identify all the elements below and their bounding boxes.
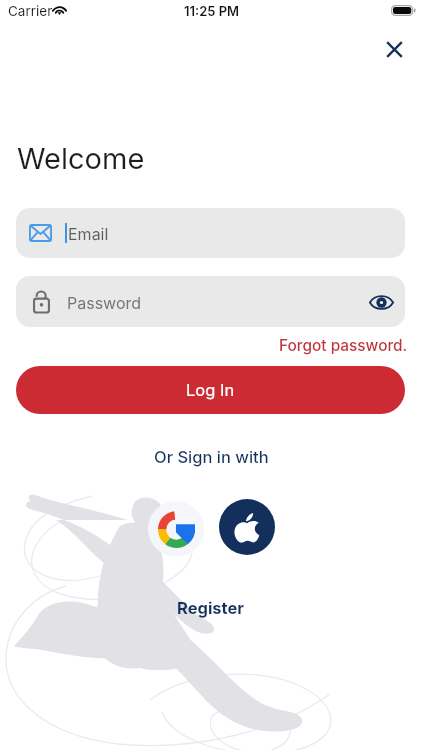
staticText: 11:25 PM (184, 3, 240, 19)
button[interactable]: Log In (16, 366, 405, 414)
staticText: Carrier (8, 3, 53, 19)
button[interactable]: Close (372, 27, 416, 71)
staticText: Log In (186, 380, 235, 400)
staticText: Forgot password. (279, 336, 408, 355)
button[interactable]: Password (16, 276, 405, 327)
button[interactable]: Sign in with Google (148, 501, 204, 557)
button[interactable]: Show password (360, 281, 402, 323)
staticText: Welcome (17, 141, 145, 176)
button[interactable]: Register (177, 598, 245, 618)
staticText: Email (68, 224, 109, 243)
staticText: Or Sign in with (154, 447, 269, 467)
button[interactable]: Sign in with Apple (219, 499, 275, 555)
staticText: Password (67, 293, 142, 312)
button[interactable]: Forgot password. (245, 334, 408, 356)
button[interactable]: Email (16, 208, 405, 258)
